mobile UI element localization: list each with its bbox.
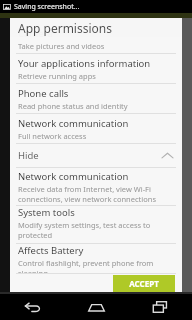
staticText: Phone calls bbox=[18, 87, 69, 100]
button[interactable]: Recent apps bbox=[128, 294, 192, 320]
staticText: Hide bbox=[18, 149, 39, 162]
staticText: ACCEPT bbox=[129, 278, 159, 289]
staticText: Saving screenshot... bbox=[14, 2, 80, 12]
staticText: Full network access bbox=[18, 131, 87, 141]
button[interactable]: Your applications information bbox=[10, 54, 182, 84]
button[interactable]: ACCEPT bbox=[113, 275, 175, 292]
staticText: Modify system settings, test access to p… bbox=[18, 220, 174, 240]
button[interactable]: System tools bbox=[10, 206, 182, 244]
staticText: connections, view network connections bbox=[18, 194, 156, 204]
staticText: Receive data from Internet, view Wi-Fi bbox=[18, 184, 151, 194]
button[interactable]: Network communication bbox=[10, 114, 182, 144]
staticText: Affects Battery bbox=[18, 244, 84, 257]
button[interactable]: Back bbox=[0, 294, 64, 320]
staticText: Your applications information bbox=[18, 57, 151, 70]
button[interactable]: Home bbox=[64, 294, 128, 320]
staticText: System tools bbox=[18, 206, 75, 219]
staticText: Network communication bbox=[18, 170, 129, 183]
staticText: Camera bbox=[18, 27, 53, 40]
button[interactable]: Phone calls bbox=[10, 84, 182, 114]
staticText: Control flashlight, prevent phone from s… bbox=[18, 258, 174, 273]
button[interactable]: Network communication bbox=[10, 168, 182, 206]
staticText: Read phone status and identity bbox=[18, 101, 128, 111]
staticText: Network communication bbox=[18, 117, 129, 130]
staticText: Take pictures and videos bbox=[18, 41, 105, 51]
button[interactable]: Hide bbox=[10, 144, 182, 168]
staticText: Retrieve running apps bbox=[18, 71, 96, 81]
staticText: App permissions bbox=[18, 20, 112, 36]
button[interactable]: Affects Battery bbox=[10, 244, 182, 274]
